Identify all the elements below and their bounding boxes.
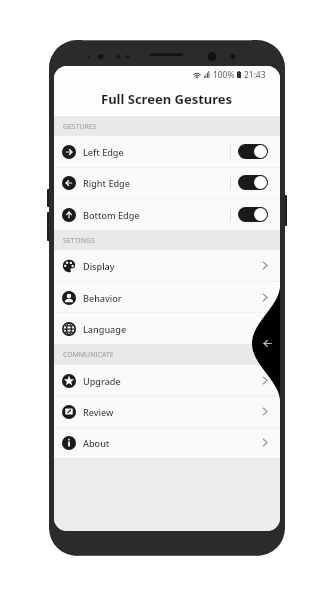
staticText: Language bbox=[83, 323, 127, 335]
staticText: Bottom Edge bbox=[83, 209, 140, 221]
staticText: Review bbox=[83, 406, 114, 418]
staticText: COMMUNICATE bbox=[63, 350, 114, 359]
button[interactable]: Review bbox=[54, 396, 280, 427]
button[interactable]: Behavior bbox=[54, 282, 280, 313]
button[interactable]: Upgrade bbox=[54, 365, 280, 396]
button[interactable]: Toggle Bottom Edge bbox=[238, 207, 268, 222]
staticText: 21:43 bbox=[244, 69, 266, 80]
button[interactable]: Bottom Edge bbox=[54, 199, 280, 230]
button[interactable]: Display bbox=[54, 250, 280, 281]
button[interactable]: Toggle Right Edge bbox=[238, 175, 268, 190]
button[interactable]: Left Edge bbox=[54, 136, 280, 167]
button[interactable]: Language bbox=[54, 313, 280, 344]
staticText: About bbox=[83, 437, 110, 449]
staticText: Behavior bbox=[83, 292, 122, 304]
button[interactable]: About bbox=[54, 427, 280, 458]
staticText: 100% bbox=[213, 69, 235, 80]
staticText: SETTINGS bbox=[63, 236, 95, 245]
button[interactable]: Toggle Left Edge bbox=[238, 144, 268, 159]
staticText: Left Edge bbox=[83, 146, 124, 158]
staticText: Upgrade bbox=[83, 375, 121, 387]
button[interactable]: Back gesture handle bbox=[252, 286, 280, 401]
button[interactable]: Right Edge bbox=[54, 167, 280, 198]
staticText: GESTURES bbox=[63, 122, 97, 131]
staticText: Full Screen Gestures bbox=[101, 90, 233, 108]
staticText: Display bbox=[83, 260, 115, 272]
staticText: Right Edge bbox=[83, 177, 130, 189]
